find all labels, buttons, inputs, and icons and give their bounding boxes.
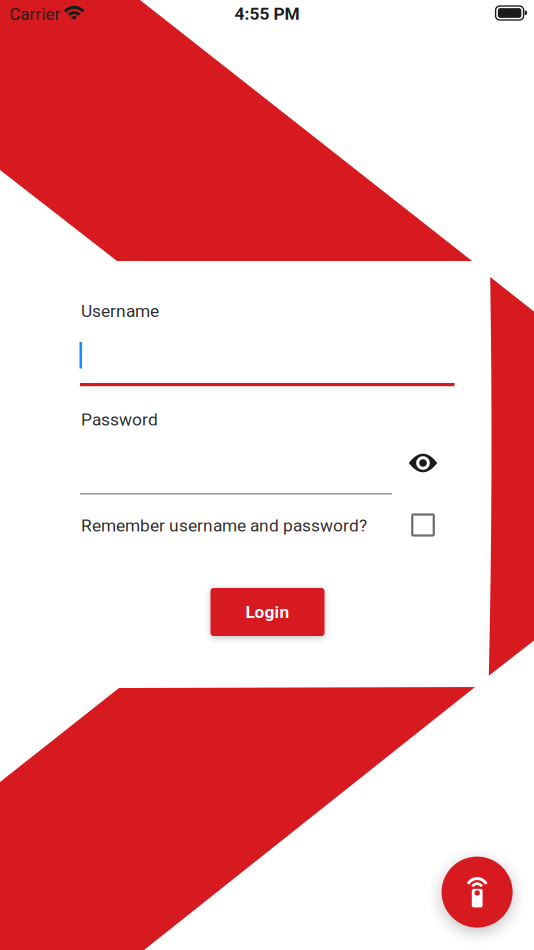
staticText: Remember username and password? <box>81 515 367 536</box>
staticText: Password <box>81 409 158 430</box>
staticText: Username <box>81 301 159 321</box>
staticText: Login <box>245 602 289 622</box>
button[interactable]: Show password <box>0 0 534 950</box>
button[interactable]: Remember username and password <box>0 0 534 950</box>
staticText: Carrier <box>9 4 60 24</box>
button[interactable]: Login <box>0 0 534 950</box>
button[interactable]: Remote control <box>0 0 534 950</box>
staticText: 4:55 PM <box>234 4 299 24</box>
